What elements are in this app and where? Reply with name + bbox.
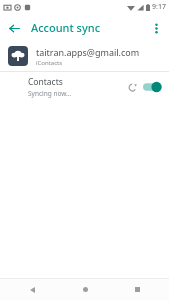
button[interactable]: Sync Contacts toggle, on xyxy=(143,80,163,94)
staticText: Contacts xyxy=(28,76,63,88)
staticText: Syncing now… xyxy=(28,89,72,98)
staticText: iContacts xyxy=(36,59,63,67)
button[interactable]: Contacts xyxy=(0,72,169,102)
button[interactable]: Back xyxy=(3,17,25,39)
button[interactable]: More options xyxy=(146,18,166,38)
staticText: taitran.apps@gmail.com xyxy=(36,46,140,58)
button[interactable]: Home xyxy=(65,279,105,300)
staticText: 9:17 xyxy=(152,2,166,12)
button[interactable]: taitran.apps@gmail.com xyxy=(0,41,169,71)
staticText: Account sync xyxy=(31,20,146,35)
other: Syncing xyxy=(125,80,139,94)
button[interactable]: Recent apps xyxy=(117,279,157,300)
button[interactable]: Back xyxy=(12,279,52,300)
